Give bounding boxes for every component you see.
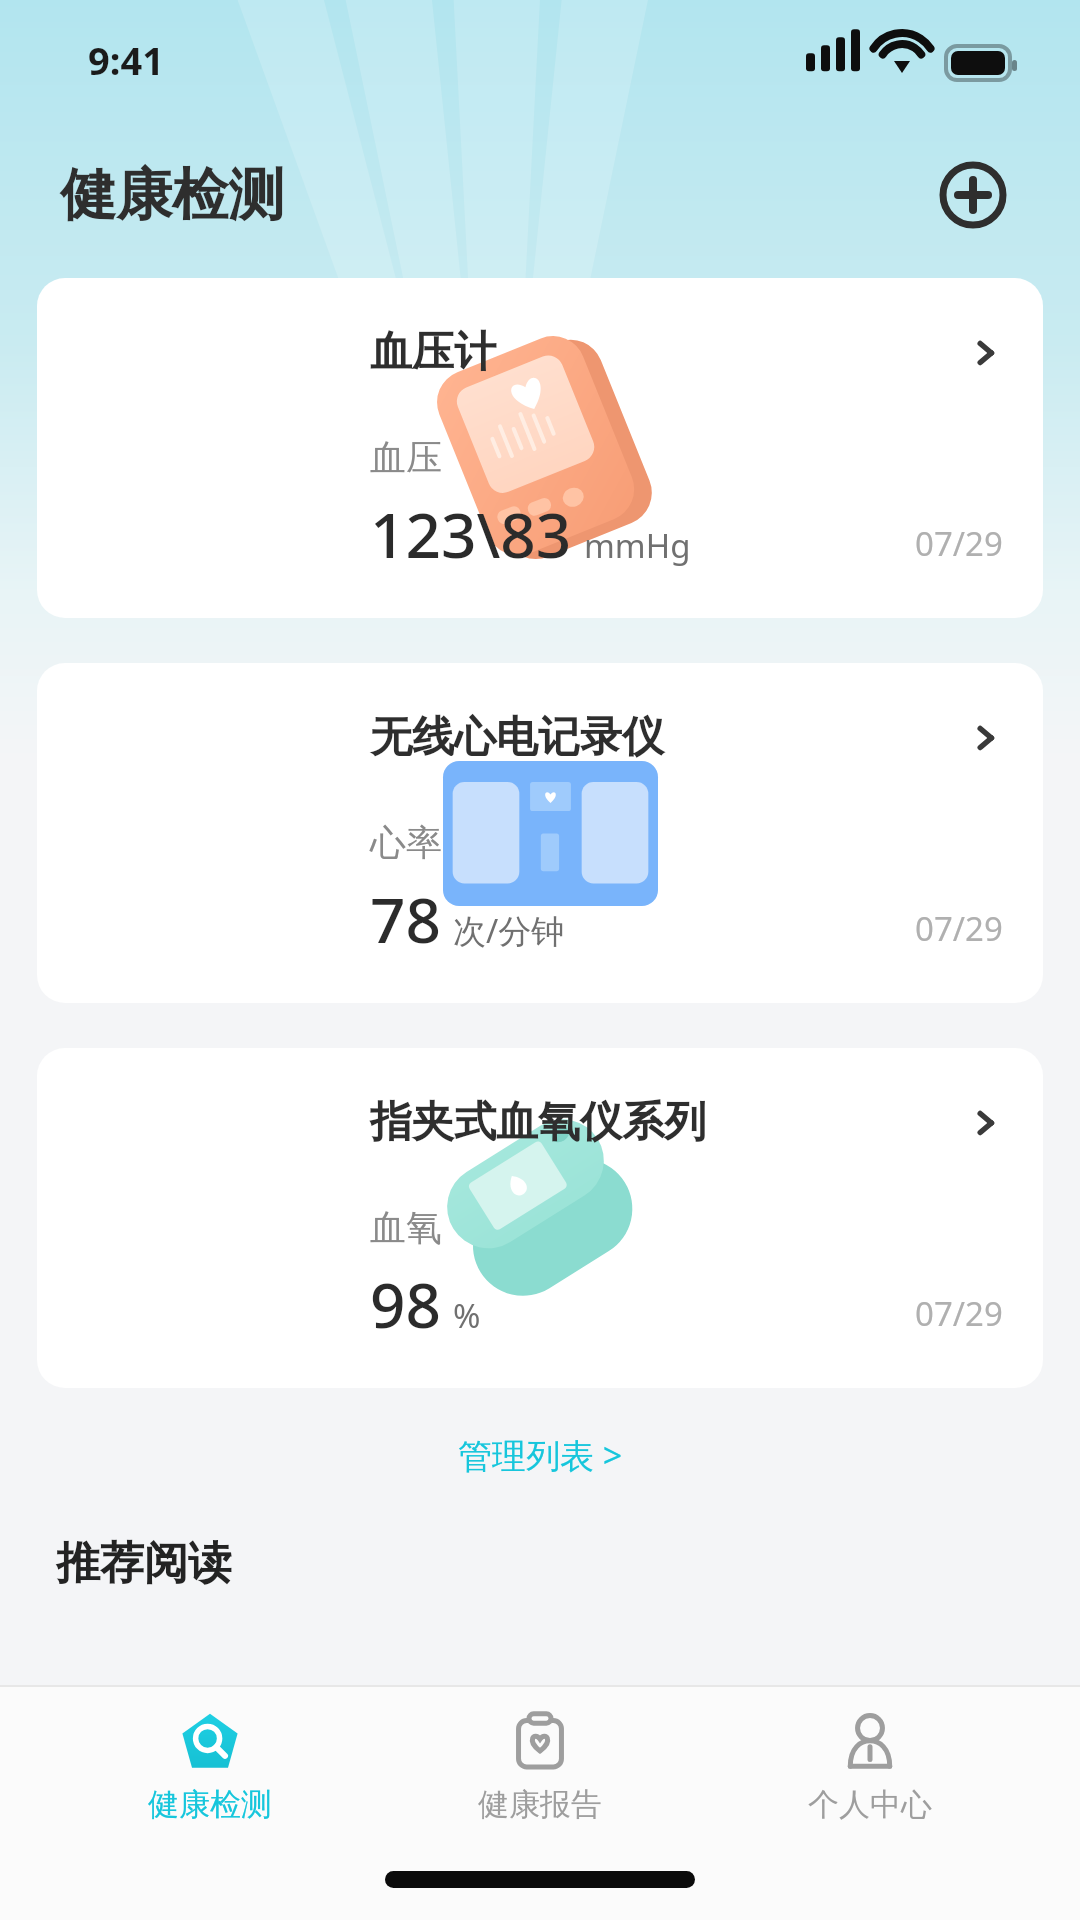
staticText: 心率: [370, 820, 442, 865]
staticText: 123\83: [370, 492, 572, 576]
staticText: 管理列表 >: [458, 1432, 623, 1478]
staticText: 血压计: [370, 326, 969, 379]
staticText: 07/29: [915, 1291, 1003, 1336]
button[interactable]: 个人中心: [750, 1705, 990, 1830]
button[interactable]: 健康检测: [90, 1705, 330, 1830]
staticText: 07/29: [915, 521, 1003, 566]
staticText: 推荐阅读: [56, 1536, 232, 1591]
staticText: 血氧: [370, 1205, 442, 1250]
staticText: mmHg: [584, 523, 691, 568]
staticText: 07/29: [915, 906, 1003, 951]
staticText: 98: [370, 1262, 441, 1346]
staticText: 健康检测: [148, 1785, 272, 1824]
staticText: 78: [370, 877, 441, 961]
staticText: 指夹式血氧仪系列: [370, 1096, 969, 1149]
staticText: 个人中心: [808, 1785, 932, 1824]
button[interactable]: 管理列表 >: [442, 1426, 639, 1484]
staticText: 血压: [370, 435, 442, 480]
button[interactable]: 无线心电记录仪: [37, 663, 1043, 1003]
staticText: 无线心电记录仪: [370, 711, 969, 764]
staticText: %: [453, 1293, 481, 1338]
button[interactable]: 健康报告: [420, 1705, 660, 1830]
button[interactable]: Add device: [938, 160, 1008, 230]
button[interactable]: 血压计: [37, 278, 1043, 618]
staticText: 次/分钟: [453, 908, 565, 953]
staticText: 健康检测: [60, 160, 284, 231]
staticText: 健康报告: [478, 1785, 602, 1824]
button[interactable]: 指夹式血氧仪系列: [37, 1048, 1043, 1388]
staticText: 9:41: [88, 34, 164, 86]
